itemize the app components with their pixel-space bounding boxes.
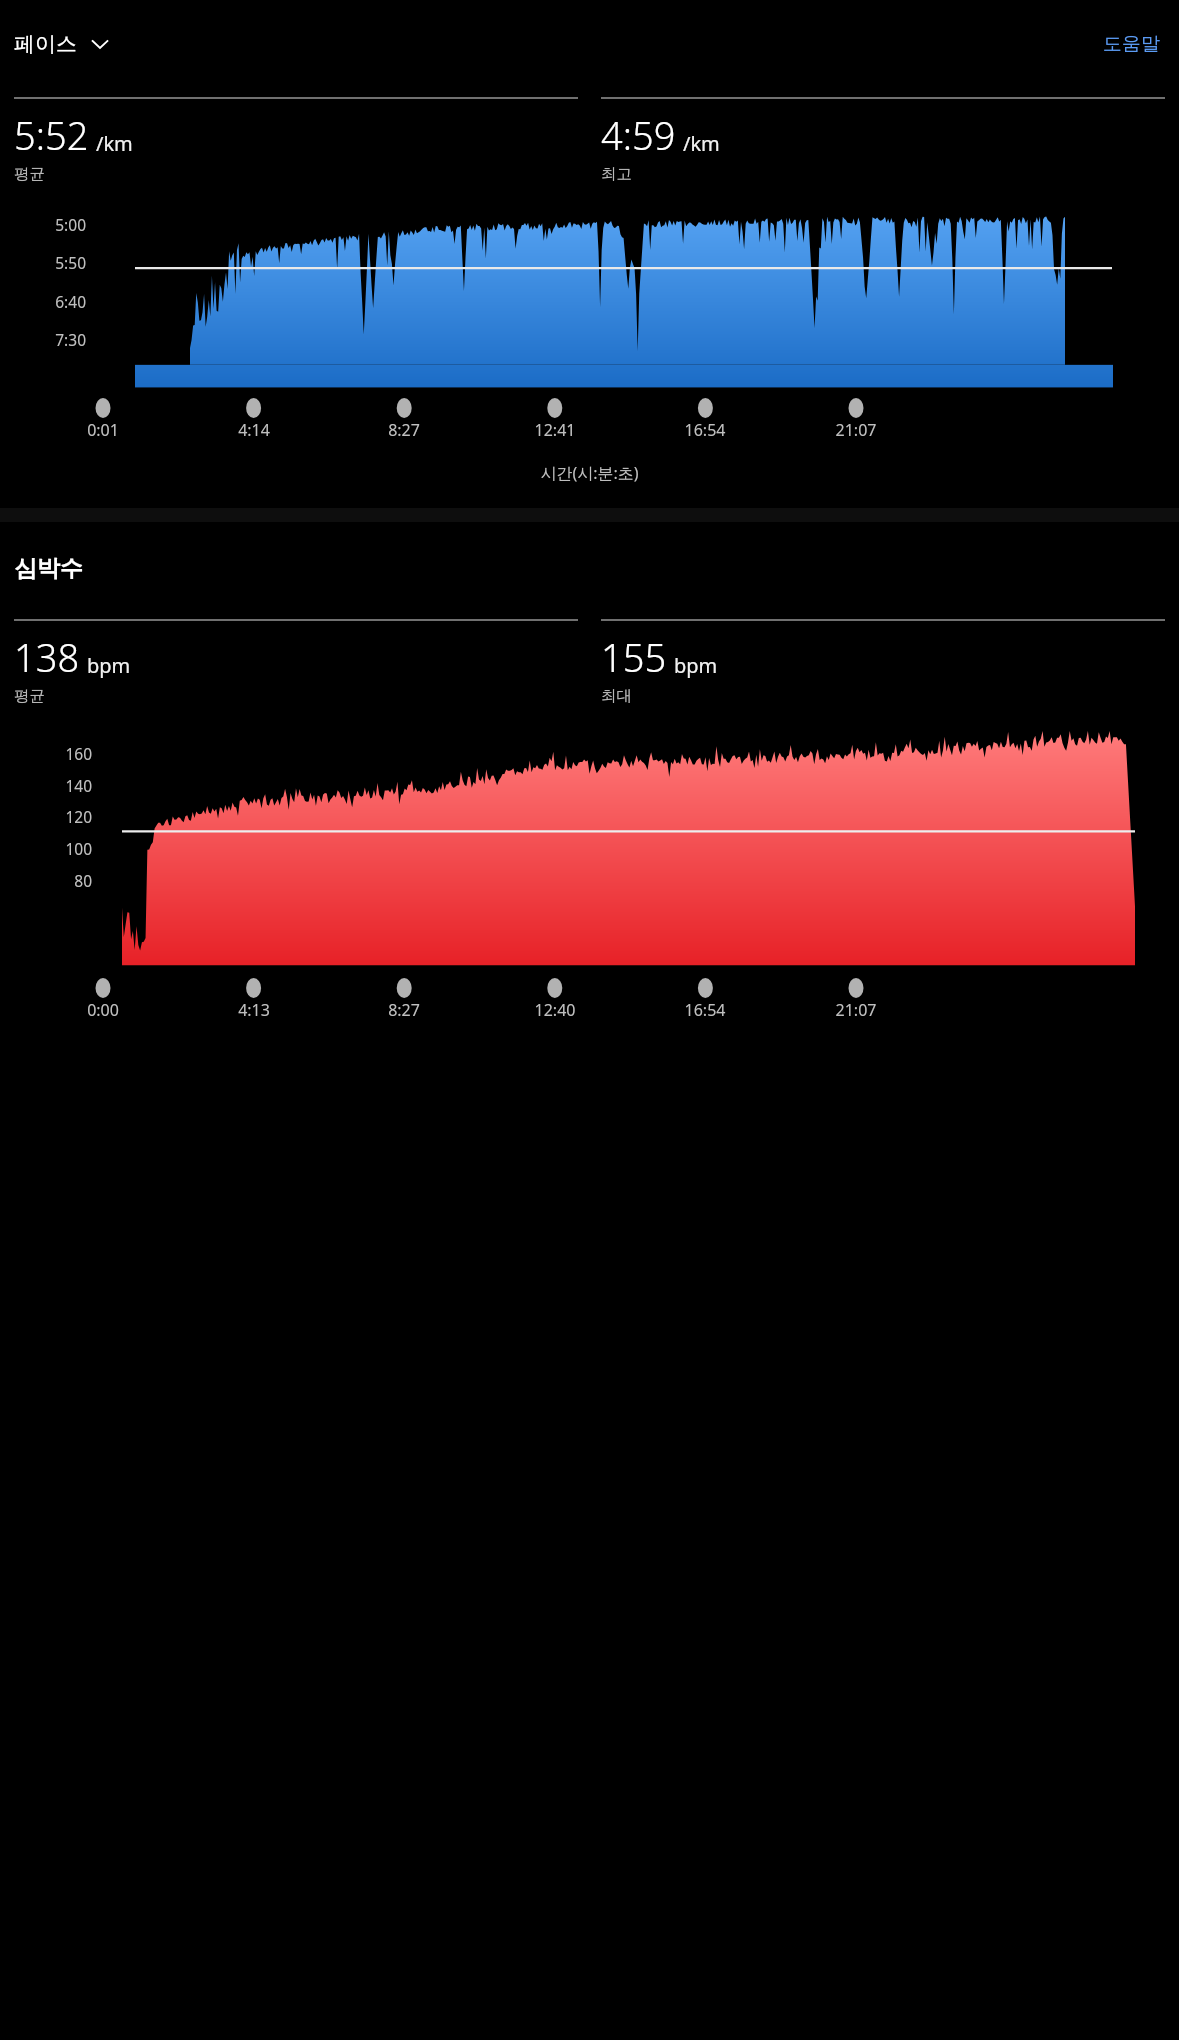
- staticText: 21:07: [816, 999, 896, 1021]
- other: Change metric: [90, 34, 110, 54]
- staticText: 심박수: [14, 554, 83, 583]
- staticText: 160: [22, 743, 92, 764]
- staticText: 5:50: [16, 252, 86, 273]
- staticText: 0:00: [63, 999, 143, 1021]
- staticText: 4:14: [214, 419, 294, 441]
- staticText: 21:07: [816, 419, 896, 441]
- staticText: 페이스: [14, 31, 77, 57]
- button[interactable]: 도움말: [1097, 24, 1166, 64]
- staticText: 시간(시:분:초): [0, 462, 1179, 484]
- staticText: 8:27: [364, 419, 444, 441]
- staticText: 도움말: [1103, 32, 1160, 56]
- staticText: 0:01: [63, 419, 143, 441]
- staticText: 100: [22, 838, 92, 859]
- staticText: 8:27: [364, 999, 444, 1021]
- staticText: /km: [683, 130, 720, 157]
- staticText: /km: [96, 130, 133, 157]
- staticText: 16:54: [665, 999, 745, 1021]
- staticText: bpm: [87, 652, 131, 679]
- staticText: 5:52: [14, 109, 89, 161]
- staticText: 155: [601, 631, 667, 683]
- button[interactable]: 페이스: [11, 25, 113, 63]
- staticText: 12:41: [515, 419, 595, 441]
- staticText: 4:59: [601, 109, 676, 161]
- staticText: 평균: [14, 686, 45, 706]
- staticText: 최대: [601, 686, 632, 706]
- staticText: 140: [22, 775, 92, 796]
- staticText: 120: [22, 806, 92, 827]
- staticText: 최고: [601, 164, 632, 184]
- staticText: 5:00: [16, 214, 86, 235]
- staticText: 80: [22, 870, 92, 891]
- staticText: bpm: [674, 652, 718, 679]
- staticText: 6:40: [16, 291, 86, 312]
- staticText: 7:30: [16, 329, 86, 350]
- staticText: 16:54: [665, 419, 745, 441]
- staticText: 평균: [14, 164, 45, 184]
- staticText: 4:13: [214, 999, 294, 1021]
- staticText: 138: [14, 631, 80, 683]
- staticText: 12:40: [515, 999, 595, 1021]
